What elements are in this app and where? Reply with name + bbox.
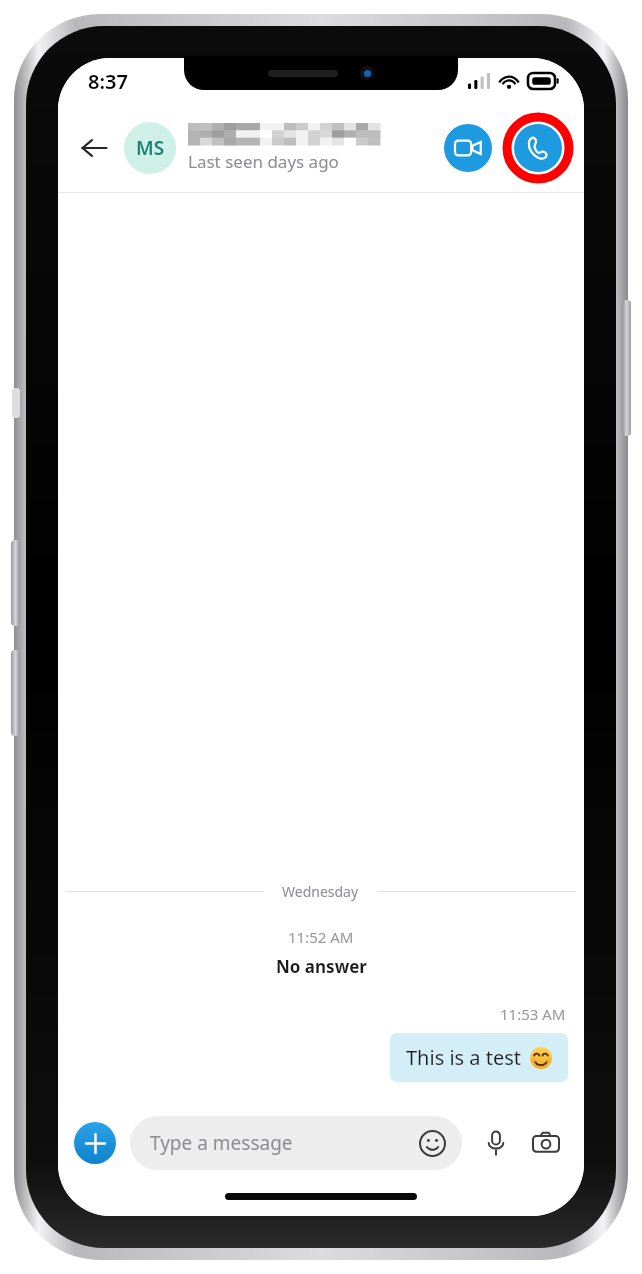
- staticText: 11:52 AM: [288, 927, 354, 947]
- staticText: No answer: [276, 955, 367, 978]
- button[interactable]: Type a message: [130, 1116, 462, 1170]
- staticText: Last seen days ago: [188, 150, 339, 173]
- button[interactable]: Back: [72, 126, 116, 170]
- button[interactable]: Emoji: [414, 1125, 450, 1161]
- button[interactable]: 11:52 AM: [58, 927, 584, 978]
- staticText: MS: [136, 135, 165, 161]
- button[interactable]: Video call: [444, 124, 492, 172]
- button[interactable]: MS: [124, 122, 176, 174]
- button[interactable]: Add attachment: [74, 1122, 116, 1164]
- button[interactable]: Camera: [524, 1121, 568, 1165]
- button[interactable]: Voice message: [474, 1121, 518, 1165]
- button[interactable]: Last seen days ago: [188, 123, 444, 173]
- staticText: 11:53 AM: [500, 1004, 566, 1024]
- staticText: Wednesday: [282, 882, 359, 901]
- staticText: This is a test: [406, 1044, 522, 1071]
- staticText: 8:37: [88, 68, 128, 95]
- button[interactable]: This is a test: [390, 1033, 568, 1082]
- button[interactable]: Audio call: [514, 124, 562, 172]
- staticText: Type a message: [150, 1130, 414, 1156]
